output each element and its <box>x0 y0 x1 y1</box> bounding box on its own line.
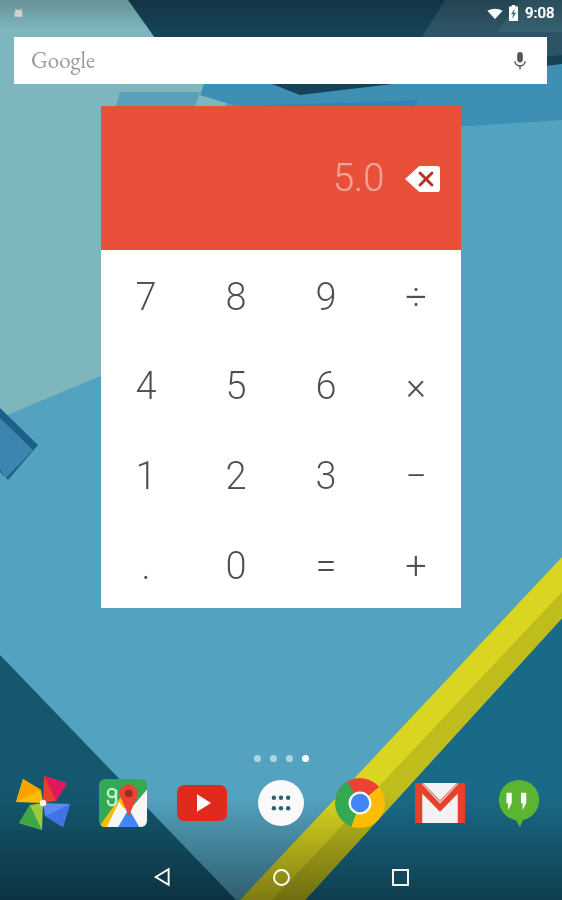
staticText: 8 <box>225 275 247 320</box>
button[interactable]: Voice search <box>513 51 527 71</box>
staticText: 6 <box>315 364 337 409</box>
staticText: = <box>315 544 337 589</box>
button[interactable]: Maps <box>92 772 154 834</box>
button[interactable]: Hangouts <box>488 772 550 834</box>
button[interactable]: Chrome <box>329 772 391 834</box>
button[interactable]: Back <box>134 849 190 900</box>
button[interactable]: ÷ <box>371 250 461 339</box>
button[interactable]: 1 <box>101 428 191 518</box>
button[interactable]: 3 <box>281 428 371 518</box>
button[interactable]: 6 <box>281 339 371 428</box>
staticText: + <box>405 544 427 589</box>
button[interactable]: Home <box>253 849 309 900</box>
staticText: 9:08 <box>525 4 555 22</box>
button[interactable]: × <box>371 339 461 428</box>
staticText: 5 <box>225 364 247 409</box>
button[interactable]: 9 <box>281 250 371 339</box>
staticText: 1 <box>135 454 157 499</box>
button[interactable]: 4 <box>101 339 191 428</box>
button[interactable]: Google <box>14 37 547 84</box>
button[interactable]: + <box>371 518 461 608</box>
staticText: × <box>406 364 426 409</box>
staticText: 5.0 <box>333 156 385 201</box>
button[interactable]: 2 <box>191 428 281 518</box>
button[interactable]: = <box>281 518 371 608</box>
button[interactable]: 5 <box>191 339 281 428</box>
staticText: 4 <box>135 364 157 409</box>
button[interactable]: − <box>371 428 461 518</box>
button[interactable]: Recent apps <box>372 849 428 900</box>
staticText: 2 <box>225 454 247 499</box>
staticText: ÷ <box>405 275 427 320</box>
button[interactable]: Backspace <box>405 166 440 192</box>
button[interactable]: Photos <box>12 772 74 834</box>
button[interactable]: 8 <box>191 250 281 339</box>
staticText: Google <box>31 45 96 75</box>
button[interactable]: Apps <box>250 772 312 834</box>
button[interactable]: 7 <box>101 250 191 339</box>
staticText: 7 <box>135 275 157 320</box>
button[interactable]: YouTube <box>171 772 233 834</box>
button[interactable]: . <box>101 518 191 608</box>
staticText: − <box>405 454 427 499</box>
staticText: 9 <box>315 275 337 320</box>
staticText: 0 <box>225 544 247 589</box>
button[interactable]: 0 <box>191 518 281 608</box>
staticText: . <box>141 544 151 589</box>
button[interactable]: Gmail <box>409 772 471 834</box>
staticText: 3 <box>315 454 337 499</box>
